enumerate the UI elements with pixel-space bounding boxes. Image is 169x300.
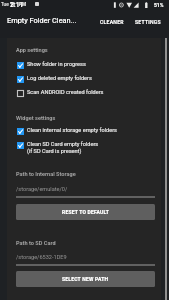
button[interactable]: SELECT NEW PATH [16, 271, 155, 287]
staticText: Tue 16 [1, 2, 16, 8]
button[interactable]: RESET TO DEFAULT [16, 204, 155, 220]
staticText: (if SD Card is present) [27, 148, 82, 155]
staticText: SETTINGS [135, 19, 161, 25]
button[interactable]: Log deleted empty folders [7, 74, 161, 88]
staticText: /storage/emulate/0/ [16, 186, 68, 193]
button[interactable]: SETTINGS [132, 11, 164, 33]
staticText: Path to Internal Storage [16, 171, 76, 178]
staticText: PM [19, 2, 27, 8]
staticText: /storage/6532-1DE9 [16, 254, 67, 261]
staticText: Clean SD Card empty folders [27, 141, 99, 148]
staticText: Scan ANDROID created folders [27, 89, 104, 96]
staticText: Empty Folder Clean... [7, 16, 97, 25]
staticText: Log deleted empty folders [27, 75, 92, 82]
button[interactable]: Show folder in progress [7, 60, 161, 74]
staticText: SELECT NEW PATH [62, 276, 109, 282]
staticText: 2:11 [10, 1, 24, 9]
staticText: 51% [154, 2, 164, 8]
button[interactable]: Clean internal storage empty folders [7, 126, 161, 140]
button[interactable]: Clean SD Card empty folders [7, 140, 161, 154]
staticText: Path to SD Card [16, 240, 56, 247]
staticText: App settings [16, 47, 48, 54]
staticText: Widget settings [16, 115, 56, 122]
staticText: Show folder in progress [27, 61, 86, 68]
staticText: Clean internal storage empty folders [27, 127, 117, 134]
staticText: RESET TO DEFAULT [62, 209, 110, 215]
button[interactable]: Scan ANDROID created folders [7, 88, 161, 102]
staticText: CLEANER [100, 19, 124, 25]
button[interactable]: CLEANER [97, 11, 127, 33]
